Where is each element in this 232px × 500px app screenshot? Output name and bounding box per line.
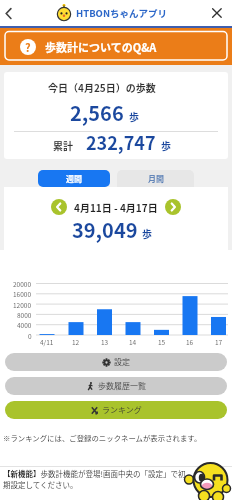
staticText: 0 bbox=[28, 331, 32, 340]
staticText: ランキング bbox=[102, 404, 142, 416]
staticText: ? bbox=[25, 39, 31, 55]
staticText: 歩 bbox=[142, 226, 152, 240]
button[interactable]: 設定 bbox=[5, 353, 227, 371]
staticText: 今日（4月25日）の歩数 bbox=[48, 80, 156, 94]
button[interactable] bbox=[51, 199, 67, 215]
button[interactable]: ? bbox=[0, 28, 232, 65]
staticText: 【新機能】歩数計機能が登場!画面中央の「設定」で初 期設定してください。 bbox=[3, 468, 186, 490]
button[interactable] bbox=[206, 0, 232, 26]
staticText: 設定 bbox=[114, 356, 130, 368]
staticText: ※ランキングには、ご登録のニックネームが表示されます。 bbox=[3, 432, 202, 443]
staticText: 12000 bbox=[13, 300, 32, 309]
staticText: 累計 bbox=[53, 138, 73, 152]
staticText: 4月11日 - 4月17日 bbox=[74, 200, 158, 214]
staticText: HTBONちゃんアプリ bbox=[76, 6, 168, 20]
button[interactable]: 月間 bbox=[117, 170, 194, 187]
staticText: 13 bbox=[101, 337, 109, 346]
staticText: 4/11 bbox=[40, 337, 54, 346]
button[interactable]: ランキング bbox=[5, 401, 227, 419]
staticText: 16000 bbox=[13, 289, 32, 298]
button[interactable]: 週間 bbox=[38, 170, 110, 187]
staticText: 4000 bbox=[17, 320, 32, 329]
staticText: 歩数履歴一覧 bbox=[98, 380, 146, 392]
staticText: 232,747 bbox=[86, 129, 156, 155]
staticText: 14 bbox=[129, 337, 137, 346]
button[interactable] bbox=[165, 199, 181, 215]
staticText: 歩 bbox=[161, 138, 171, 152]
staticText: 8000 bbox=[17, 310, 32, 319]
staticText: 15 bbox=[158, 337, 166, 346]
staticText: 20000 bbox=[13, 279, 32, 288]
staticText: 週間 bbox=[66, 173, 82, 185]
staticText: 歩 bbox=[129, 109, 139, 123]
button[interactable] bbox=[0, 0, 26, 26]
staticText: 歩数計についてのQ&A bbox=[45, 39, 157, 55]
staticText: 16 bbox=[186, 337, 194, 346]
staticText: 12 bbox=[72, 337, 80, 346]
staticText: 月間 bbox=[148, 173, 164, 185]
staticText: 39,049 bbox=[72, 215, 138, 244]
staticText: 17 bbox=[215, 337, 223, 346]
button[interactable]: 歩数履歴一覧 bbox=[5, 377, 227, 395]
staticText: 2,566 bbox=[70, 98, 124, 127]
